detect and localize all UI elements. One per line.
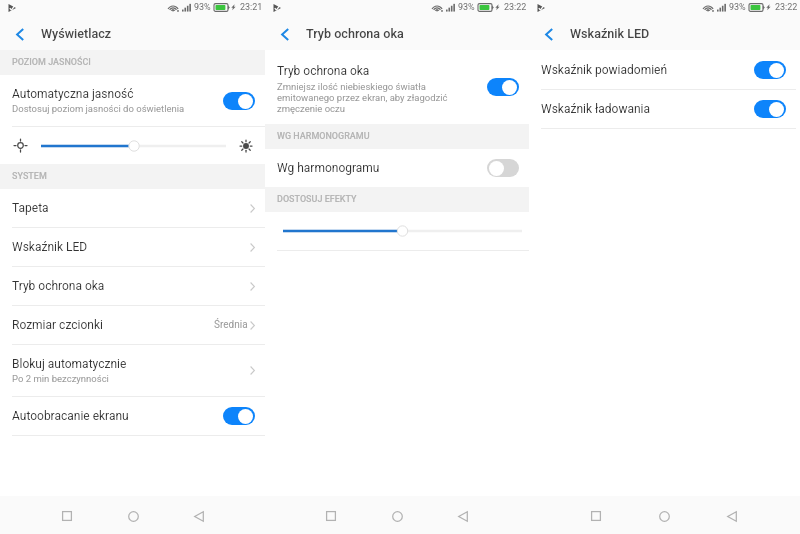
button[interactable]: Turn off <box>223 92 255 110</box>
staticText: Wskaźnik ładowania <box>541 102 754 116</box>
button[interactable]: Back <box>272 21 298 47</box>
staticText: Wyświetlacz <box>41 26 112 41</box>
button[interactable]: Tryb ochrona oka <box>0 267 265 305</box>
staticText: Rozmiar czcionki <box>12 318 214 332</box>
button[interactable]: Home <box>364 496 430 534</box>
staticText: Zmniejsz ilość niebieskiego światła emit… <box>277 81 448 114</box>
staticText: Tryb ochrona oka <box>277 64 370 78</box>
staticText: 23:22 <box>775 2 798 13</box>
staticText: Średnia <box>214 319 248 331</box>
staticText: SYSTEM <box>12 171 47 182</box>
staticText: Wskaźnik LED <box>12 240 250 254</box>
button[interactable]: Home <box>630 496 698 534</box>
button[interactable]: Turn off <box>754 61 786 79</box>
button[interactable]: Back <box>536 21 562 47</box>
button[interactable]: Blokuj automatycznie <box>0 345 265 396</box>
button[interactable]: Back <box>7 21 33 47</box>
staticText: Wskaźnik LED <box>570 26 650 41</box>
button[interactable]: Turn off <box>487 78 519 96</box>
staticText: Wskaźnik powiadomień <box>541 63 754 77</box>
staticText: 23:22 <box>504 2 527 13</box>
staticText: Wg harmonogramu <box>277 161 487 175</box>
button[interactable]: Tapeta <box>0 189 265 227</box>
button[interactable]: Recents <box>298 496 364 534</box>
staticText: Dostosuj poziom jasności do oświetlenia <box>12 103 185 114</box>
button[interactable]: Back <box>698 496 766 534</box>
button[interactable]: Wskaźnik ładowania <box>529 90 796 128</box>
staticText: Tryb ochrona oka <box>12 279 250 293</box>
staticText: Blokuj automatycznie <box>12 357 127 371</box>
button[interactable]: Turn off <box>223 407 255 425</box>
staticText: Autoobracanie ekranu <box>12 409 223 423</box>
button[interactable]: Rozmiar czcionki <box>0 306 265 344</box>
button[interactable]: Turn off <box>754 100 786 118</box>
staticText: WG HARMONOGRAMU <box>277 131 370 142</box>
staticText: Tryb ochrona oka <box>306 26 404 41</box>
staticText: 23:21 <box>240 2 263 13</box>
button[interactable]: Recents <box>34 496 100 534</box>
staticText: 93% <box>729 2 746 13</box>
button[interactable]: Automatyczna jasność <box>0 75 265 126</box>
staticText: Po 2 min bezczynności <box>12 373 109 384</box>
button[interactable]: Wskaźnik powiadomień <box>529 51 796 89</box>
staticText: 93% <box>458 2 475 13</box>
staticText: Automatyczna jasność <box>12 87 134 101</box>
button[interactable]: Back <box>430 496 496 534</box>
button[interactable]: Back <box>166 496 232 534</box>
staticText: DOSTOSUJ EFEKTY <box>277 194 357 205</box>
button[interactable]: Home <box>100 496 166 534</box>
staticText: Tapeta <box>12 201 250 215</box>
button[interactable]: Wg harmonogramu <box>265 149 529 187</box>
button[interactable]: Autoobracanie ekranu <box>0 397 265 435</box>
button[interactable]: Turn on <box>487 159 519 177</box>
button[interactable]: Tryb ochrona oka <box>265 50 529 124</box>
button[interactable]: Wskaźnik LED <box>0 228 265 266</box>
staticText: 93% <box>194 2 211 13</box>
staticText: POZIOM JASNOŚCI <box>12 57 91 68</box>
button[interactable]: Recents <box>562 496 630 534</box>
